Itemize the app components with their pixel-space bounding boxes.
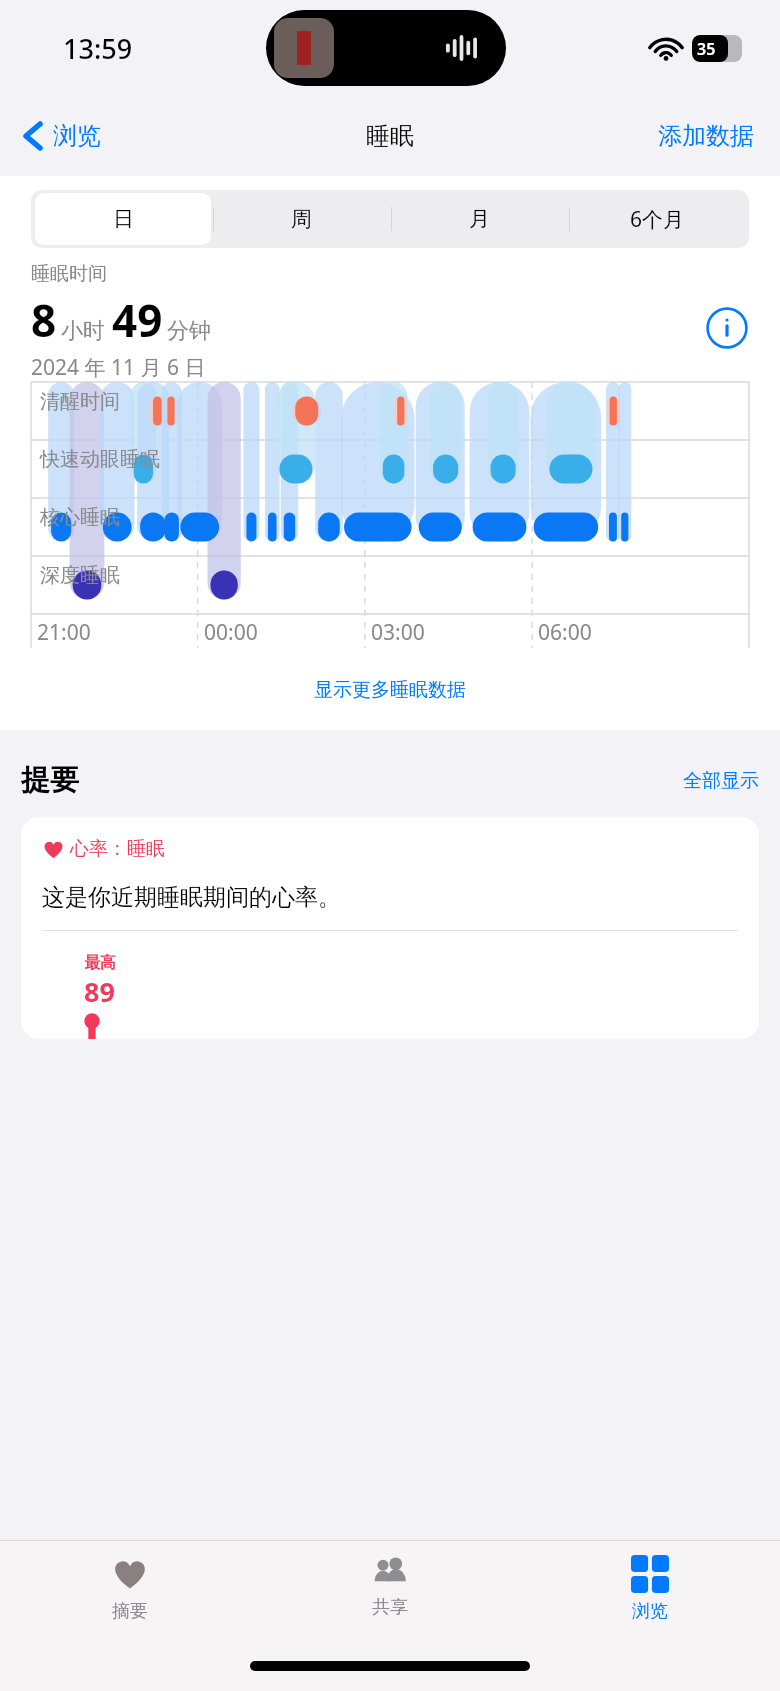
- staticText: 03:00: [371, 618, 425, 647]
- staticText: 8: [31, 290, 57, 350]
- staticText: 浏览: [53, 121, 101, 151]
- staticText: 最高: [84, 953, 116, 973]
- staticText: 49: [112, 290, 163, 350]
- staticText: 周: [291, 206, 312, 232]
- button[interactable]: 浏览: [16, 115, 107, 157]
- staticText: 共享: [372, 1596, 408, 1619]
- staticText: 心率：睡眠: [70, 837, 165, 861]
- staticText: 深度睡眠: [40, 563, 120, 588]
- staticText: 浏览: [632, 1600, 668, 1623]
- staticText: 分钟: [167, 317, 211, 345]
- button[interactable]: 显示更多睡眠数据: [0, 672, 780, 708]
- button[interactable]: 周: [213, 193, 389, 245]
- staticText: 显示更多睡眠数据: [314, 678, 466, 702]
- staticText: 日: [113, 206, 134, 232]
- staticText: 睡眠: [366, 121, 414, 151]
- button[interactable]: 共享: [260, 1541, 520, 1649]
- staticText: 添加数据: [658, 121, 754, 151]
- button[interactable]: 信息: [705, 306, 749, 350]
- button[interactable]: 心率：睡眠: [21, 817, 759, 1039]
- staticText: 21:00: [37, 618, 91, 647]
- button[interactable]: 浏览: [520, 1541, 780, 1649]
- staticText: 月: [469, 206, 490, 232]
- staticText: 13:59: [63, 30, 133, 67]
- staticText: 06:00: [538, 618, 592, 647]
- staticText: 快速动眼睡眠: [40, 447, 160, 472]
- staticText: 2024 年 11 月 6 日: [31, 353, 206, 382]
- staticText: 这是你近期睡眠期间的心率。: [42, 883, 341, 912]
- staticText: 提要: [21, 762, 79, 799]
- button[interactable]: 摘要: [0, 1541, 260, 1649]
- button[interactable]: 6个月: [569, 193, 745, 245]
- staticText: 89: [84, 973, 115, 1010]
- staticText: 核心睡眠: [40, 505, 120, 530]
- button[interactable]: 添加数据: [654, 117, 758, 155]
- staticText: 小时: [61, 317, 105, 345]
- staticText: 摘要: [112, 1600, 148, 1623]
- button[interactable]: 全部显示: [683, 769, 759, 793]
- staticText: 清醒时间: [40, 389, 120, 414]
- staticText: 00:00: [204, 618, 258, 647]
- staticText: 6个月: [630, 205, 685, 234]
- staticText: 35: [697, 38, 716, 60]
- button[interactable]: 月: [391, 193, 567, 245]
- button[interactable]: 日: [35, 193, 211, 245]
- staticText: 全部显示: [683, 769, 759, 793]
- staticText: 睡眠时间: [31, 262, 107, 286]
